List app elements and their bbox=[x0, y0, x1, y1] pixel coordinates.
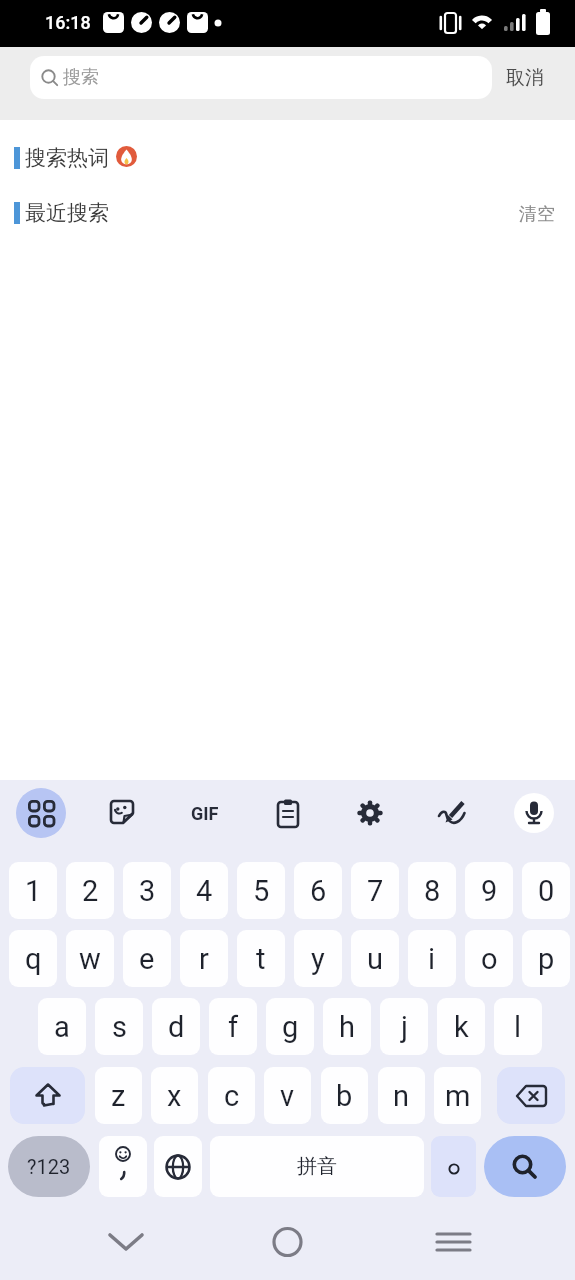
button[interactable]: s bbox=[95, 998, 143, 1055]
button[interactable] bbox=[10, 1067, 85, 1124]
staticText: q bbox=[25, 942, 42, 976]
staticText: 8 bbox=[424, 874, 441, 908]
button[interactable]: k bbox=[437, 998, 485, 1055]
staticText: 5 bbox=[253, 874, 270, 908]
button[interactable] bbox=[345, 788, 395, 838]
button[interactable]: b bbox=[321, 1067, 368, 1124]
staticText: z bbox=[111, 1079, 126, 1113]
staticText: v bbox=[280, 1079, 295, 1113]
button[interactable] bbox=[99, 1136, 147, 1197]
button[interactable]: 8 bbox=[408, 862, 456, 919]
button[interactable] bbox=[263, 788, 313, 838]
staticText: x bbox=[167, 1079, 182, 1113]
button[interactable]: 6 bbox=[294, 862, 342, 919]
button[interactable] bbox=[427, 788, 477, 838]
button[interactable] bbox=[16, 788, 66, 838]
staticText: f bbox=[228, 1010, 239, 1044]
staticText: j bbox=[401, 1010, 408, 1044]
staticText: b bbox=[336, 1079, 353, 1113]
staticText: y bbox=[311, 942, 325, 976]
button[interactable]: i bbox=[408, 930, 456, 987]
staticText: d bbox=[168, 1010, 185, 1044]
button[interactable]: a bbox=[38, 998, 86, 1055]
staticText: GIF bbox=[191, 803, 219, 824]
button[interactable]: 0 bbox=[522, 862, 570, 919]
button[interactable]: h bbox=[323, 998, 371, 1055]
button[interactable]: 3 bbox=[123, 862, 171, 919]
staticText: w bbox=[79, 942, 101, 976]
staticText: ?123 bbox=[27, 1155, 71, 1178]
staticText: s bbox=[112, 1010, 127, 1044]
button[interactable] bbox=[98, 788, 148, 838]
button[interactable]: j bbox=[380, 998, 428, 1055]
button[interactable] bbox=[252, 1225, 322, 1270]
button[interactable] bbox=[514, 793, 554, 833]
button[interactable]: u bbox=[351, 930, 399, 987]
button[interactable]: 搜索 bbox=[30, 56, 492, 99]
staticText: 拼音 bbox=[297, 1154, 337, 1179]
staticText: m bbox=[445, 1079, 471, 1113]
button[interactable]: 拼音 bbox=[210, 1136, 424, 1197]
staticText: r bbox=[199, 942, 209, 976]
button[interactable]: m bbox=[434, 1067, 481, 1124]
button[interactable]: e bbox=[123, 930, 171, 987]
staticText: t bbox=[256, 942, 266, 976]
staticText: 0 bbox=[538, 874, 555, 908]
button[interactable] bbox=[484, 1136, 566, 1197]
button[interactable]: c bbox=[208, 1067, 255, 1124]
button[interactable]: 7 bbox=[351, 862, 399, 919]
button[interactable] bbox=[418, 1225, 488, 1270]
staticText: 3 bbox=[139, 874, 156, 908]
button[interactable]: 取消 bbox=[506, 66, 544, 90]
button[interactable]: 2 bbox=[66, 862, 114, 919]
button[interactable] bbox=[90, 1225, 160, 1270]
staticText: 2 bbox=[82, 874, 99, 908]
staticText: 4 bbox=[196, 874, 213, 908]
button[interactable]: v bbox=[264, 1067, 311, 1124]
staticText: i bbox=[428, 942, 436, 976]
button[interactable]: o bbox=[465, 930, 513, 987]
button[interactable]: l bbox=[494, 998, 542, 1055]
staticText: p bbox=[538, 942, 555, 976]
staticText: 6 bbox=[310, 874, 327, 908]
button[interactable] bbox=[431, 1136, 476, 1197]
button[interactable]: p bbox=[522, 930, 570, 987]
button[interactable]: x bbox=[151, 1067, 198, 1124]
button[interactable]: d bbox=[152, 998, 200, 1055]
button[interactable]: w bbox=[66, 930, 114, 987]
button[interactable]: r bbox=[180, 930, 228, 987]
button[interactable]: 1 bbox=[9, 862, 57, 919]
button[interactable] bbox=[497, 1067, 565, 1124]
staticText: n bbox=[393, 1079, 410, 1113]
staticText: 1 bbox=[25, 874, 42, 908]
button[interactable]: t bbox=[237, 930, 285, 987]
staticText: 搜索 bbox=[63, 66, 99, 89]
button[interactable]: y bbox=[294, 930, 342, 987]
button[interactable]: n bbox=[378, 1067, 425, 1124]
button[interactable]: g bbox=[266, 998, 314, 1055]
button[interactable]: 4 bbox=[180, 862, 228, 919]
button[interactable]: q bbox=[9, 930, 57, 987]
button[interactable]: GIF bbox=[177, 788, 233, 838]
staticText: g bbox=[282, 1010, 299, 1044]
staticText: 7 bbox=[367, 874, 384, 908]
staticText: k bbox=[454, 1010, 469, 1044]
button[interactable]: ?123 bbox=[8, 1136, 90, 1197]
staticText: 9 bbox=[481, 874, 498, 908]
button[interactable]: 5 bbox=[237, 862, 285, 919]
staticText: o bbox=[481, 942, 498, 976]
button[interactable]: 9 bbox=[465, 862, 513, 919]
staticText: 搜索热词 bbox=[25, 145, 109, 171]
staticText: u bbox=[367, 942, 383, 976]
staticText: 16:18 bbox=[45, 12, 91, 33]
staticText: c bbox=[224, 1079, 240, 1113]
staticText: l bbox=[514, 1010, 522, 1044]
staticText: 最近搜索 bbox=[25, 200, 109, 226]
button[interactable]: z bbox=[95, 1067, 142, 1124]
button[interactable]: f bbox=[209, 998, 257, 1055]
staticText: a bbox=[54, 1010, 70, 1044]
staticText: e bbox=[139, 942, 155, 976]
staticText: h bbox=[339, 1010, 355, 1044]
button[interactable]: 清空 bbox=[519, 203, 555, 226]
button[interactable] bbox=[154, 1136, 202, 1197]
